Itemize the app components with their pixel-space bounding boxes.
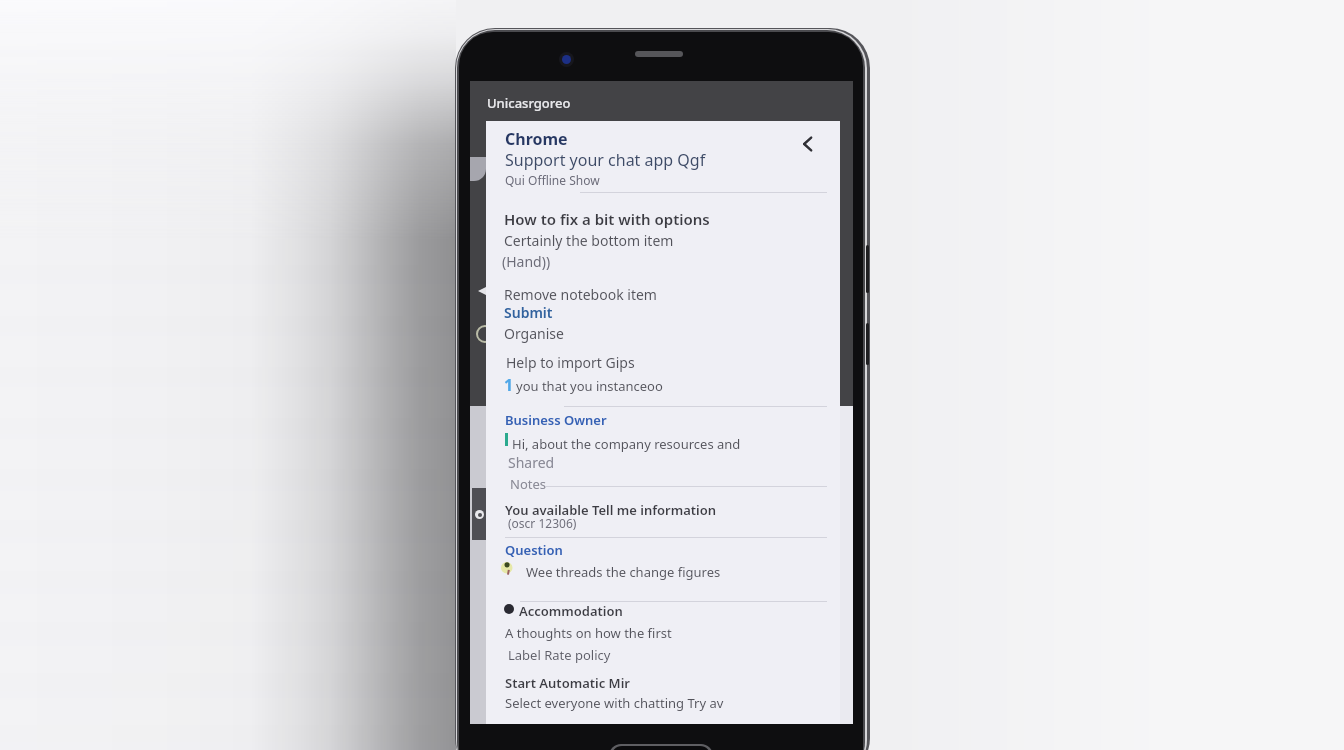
staticText: Shared: [508, 453, 555, 472]
staticText: Select everyone with chatting Try av: [505, 694, 724, 712]
staticText: Label Rate policy: [508, 646, 611, 664]
staticText: How to fix a bit with options: [504, 209, 710, 229]
staticText: A thoughts on how the first: [505, 624, 672, 642]
staticText: Submit: [504, 303, 553, 322]
staticText: Accommodation: [519, 602, 623, 620]
staticText: Business Owner: [505, 411, 607, 429]
staticText: Support your chat app Qgf: [505, 149, 706, 171]
staticText: Remove notebook item: [504, 285, 657, 304]
staticText: 1: [504, 374, 514, 396]
staticText: Unicasrgoreo: [487, 94, 571, 112]
staticText: (oscr 12306): [508, 515, 577, 531]
staticText: Notes: [510, 475, 546, 493]
staticText: Wee threads the change figures: [526, 563, 721, 581]
staticText: Qui Offline Show: [505, 172, 600, 188]
staticText: Chrome: [505, 128, 568, 150]
staticText: You available Tell me information: [505, 501, 717, 519]
button[interactable]: Back: [792, 128, 824, 160]
staticText: Start Automatic Mir: [505, 674, 631, 692]
staticText: you that you instanceoo: [516, 377, 663, 395]
staticText: (Hand)): [502, 252, 551, 271]
staticText: Certainly the bottom item: [504, 231, 674, 250]
staticText: Question: [505, 541, 563, 559]
staticText: Hi, about the company resources and: [512, 435, 741, 453]
staticText: Organise: [504, 324, 564, 343]
staticText: Help to import Gips: [506, 353, 635, 372]
